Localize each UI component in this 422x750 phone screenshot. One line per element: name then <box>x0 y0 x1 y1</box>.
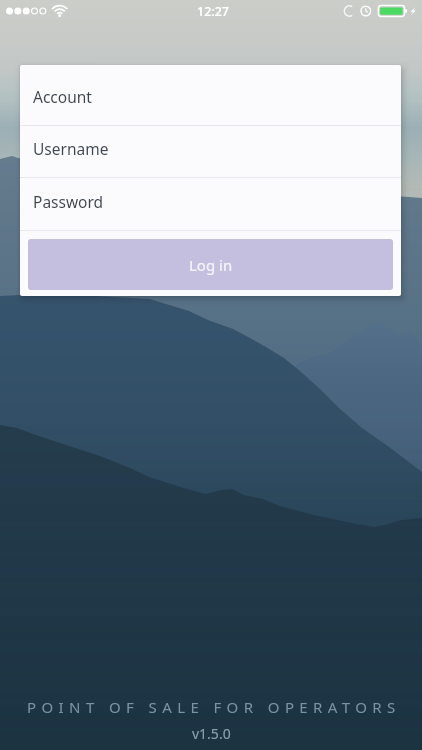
staticText: Password <box>33 191 104 212</box>
staticText: POINT OF SALE FOR OPERATORS <box>27 697 401 717</box>
staticText: Username <box>33 138 109 159</box>
staticText: Log in <box>189 255 233 275</box>
staticText: 12:27 <box>197 3 230 20</box>
button[interactable]: Username <box>20 126 401 177</box>
staticText: v1.5.0 <box>192 724 231 743</box>
button[interactable]: Account <box>20 73 401 125</box>
button[interactable]: Log in <box>28 239 393 290</box>
staticText: Account <box>33 86 92 107</box>
button[interactable]: Password <box>20 178 401 230</box>
